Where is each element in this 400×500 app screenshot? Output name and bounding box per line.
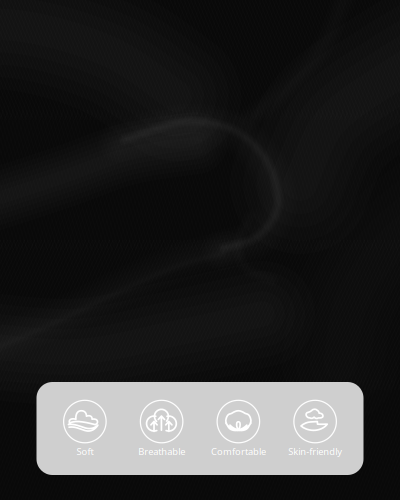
button[interactable]: Comfortable [200,400,277,458]
staticText: Comfortable [211,445,266,458]
staticText: Skin-friendly [288,445,342,458]
staticText: Breathable [138,445,185,458]
button[interactable]: Soft [46,400,123,458]
button[interactable]: Skin-friendly [277,400,354,458]
button[interactable]: Breathable [123,400,200,458]
staticText: Soft [76,445,93,458]
